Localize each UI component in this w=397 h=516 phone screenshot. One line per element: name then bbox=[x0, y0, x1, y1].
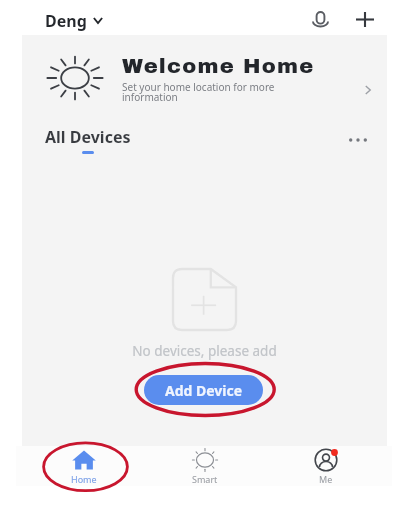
staticText: Home bbox=[71, 473, 97, 485]
button[interactable]: Voice search bbox=[308, 7, 332, 31]
button[interactable]: More options bbox=[343, 125, 373, 155]
button[interactable]: Home bbox=[22, 446, 146, 485]
button[interactable]: Add device bbox=[353, 7, 377, 31]
button[interactable]: All Devices bbox=[45, 126, 131, 154]
staticText: All Devices bbox=[45, 126, 131, 148]
staticText: Deng bbox=[45, 10, 87, 32]
staticText: Me bbox=[319, 473, 333, 485]
button[interactable]: Deng bbox=[45, 10, 103, 32]
staticText: Smart bbox=[192, 473, 218, 485]
button[interactable]: Smart bbox=[146, 446, 263, 485]
staticText: Welcome Home bbox=[122, 55, 315, 78]
staticText: No devices, please add bbox=[132, 342, 277, 360]
staticText: Set your home location for more informat… bbox=[122, 80, 280, 104]
button[interactable]: Add Device bbox=[144, 375, 263, 405]
button[interactable]: Welcome Home bbox=[22, 40, 387, 112]
button[interactable]: Me bbox=[266, 446, 386, 485]
staticText: Add Device bbox=[165, 381, 243, 400]
